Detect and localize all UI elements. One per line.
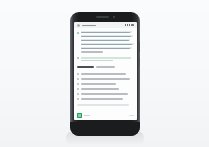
button[interactable] <box>77 93 134 95</box>
button[interactable]: Open in Sheets <box>77 113 90 118</box>
button[interactable]: Suggestion marker <box>77 57 79 59</box>
button[interactable] <box>77 98 134 100</box>
button[interactable] <box>77 73 134 75</box>
button[interactable] <box>77 78 134 80</box>
button[interactable]: Comment marker <box>77 32 79 34</box>
button[interactable] <box>77 83 134 85</box>
button[interactable] <box>77 88 134 90</box>
